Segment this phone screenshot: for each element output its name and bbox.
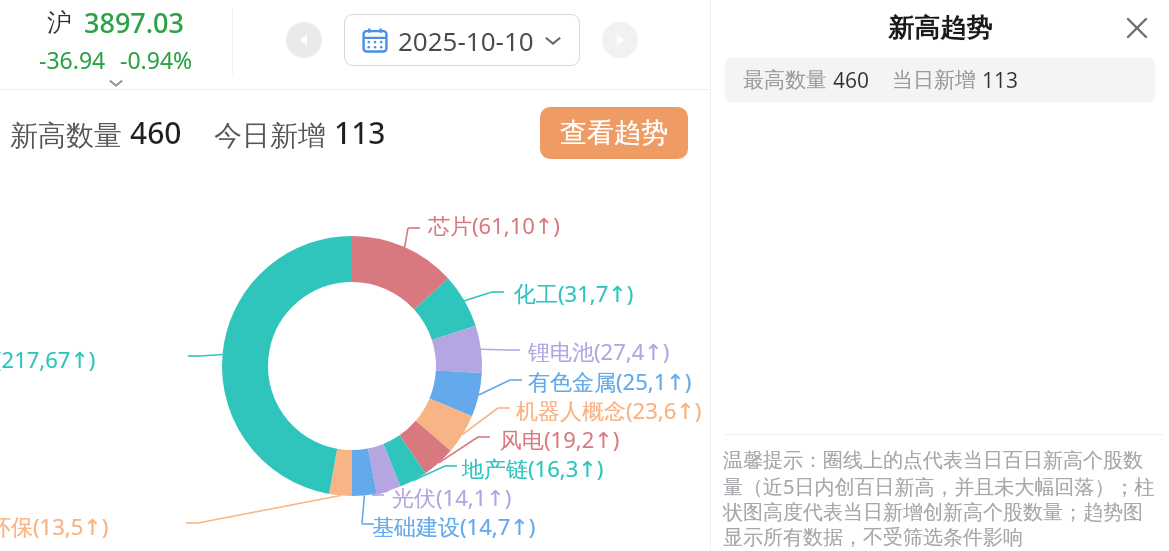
- staticText: 460: [130, 112, 182, 153]
- staticText: 机器人概念(23,6↑): [516, 395, 702, 425]
- staticText: 查看趋势: [560, 116, 668, 150]
- staticText: 当日新增: [892, 67, 976, 93]
- staticText: 新高趋势: [888, 12, 992, 45]
- button[interactable]: 2025-10-10: [345, 15, 579, 65]
- staticText: 环保(13,5↑): [0, 511, 109, 541]
- staticText: 沪: [47, 7, 72, 38]
- button[interactable]: Next day: [602, 22, 638, 58]
- staticText: 今日新增: [214, 118, 326, 153]
- staticText: 新高数量: [10, 118, 122, 153]
- button[interactable]: Previous day: [286, 22, 322, 58]
- staticText: 锂电池(27,4↑): [528, 336, 670, 366]
- staticText: 化工(31,7↑): [514, 278, 634, 308]
- staticText: 其他(217,67↑): [0, 344, 96, 374]
- staticText: 芯片(61,10↑): [428, 210, 560, 240]
- staticText: 有色金属(25,1↑): [528, 366, 692, 396]
- staticText: 地产链(16,3↑): [462, 453, 604, 483]
- staticText: -36.94: [39, 44, 106, 75]
- staticText: 最高数量: [743, 67, 827, 93]
- staticText: 3897.03: [84, 4, 185, 41]
- staticText: 113: [334, 112, 386, 153]
- staticText: 113: [982, 66, 1019, 95]
- staticText: 460: [833, 66, 870, 95]
- staticText: 2025-10-10: [398, 23, 534, 58]
- button[interactable]: 查看趋势: [540, 107, 688, 159]
- staticText: 温馨提示：圈线上的点代表当日百日新高个股数量（近5日内创百日新高，并且未大幅回落…: [723, 448, 1161, 550]
- staticText: -0.94%: [120, 44, 193, 75]
- staticText: 风电(19,2↑): [500, 424, 620, 454]
- staticText: 光伏(14,1↑): [392, 482, 512, 512]
- staticText: 基础建设(14,7↑): [372, 511, 536, 541]
- button[interactable]: Close: [1117, 8, 1157, 48]
